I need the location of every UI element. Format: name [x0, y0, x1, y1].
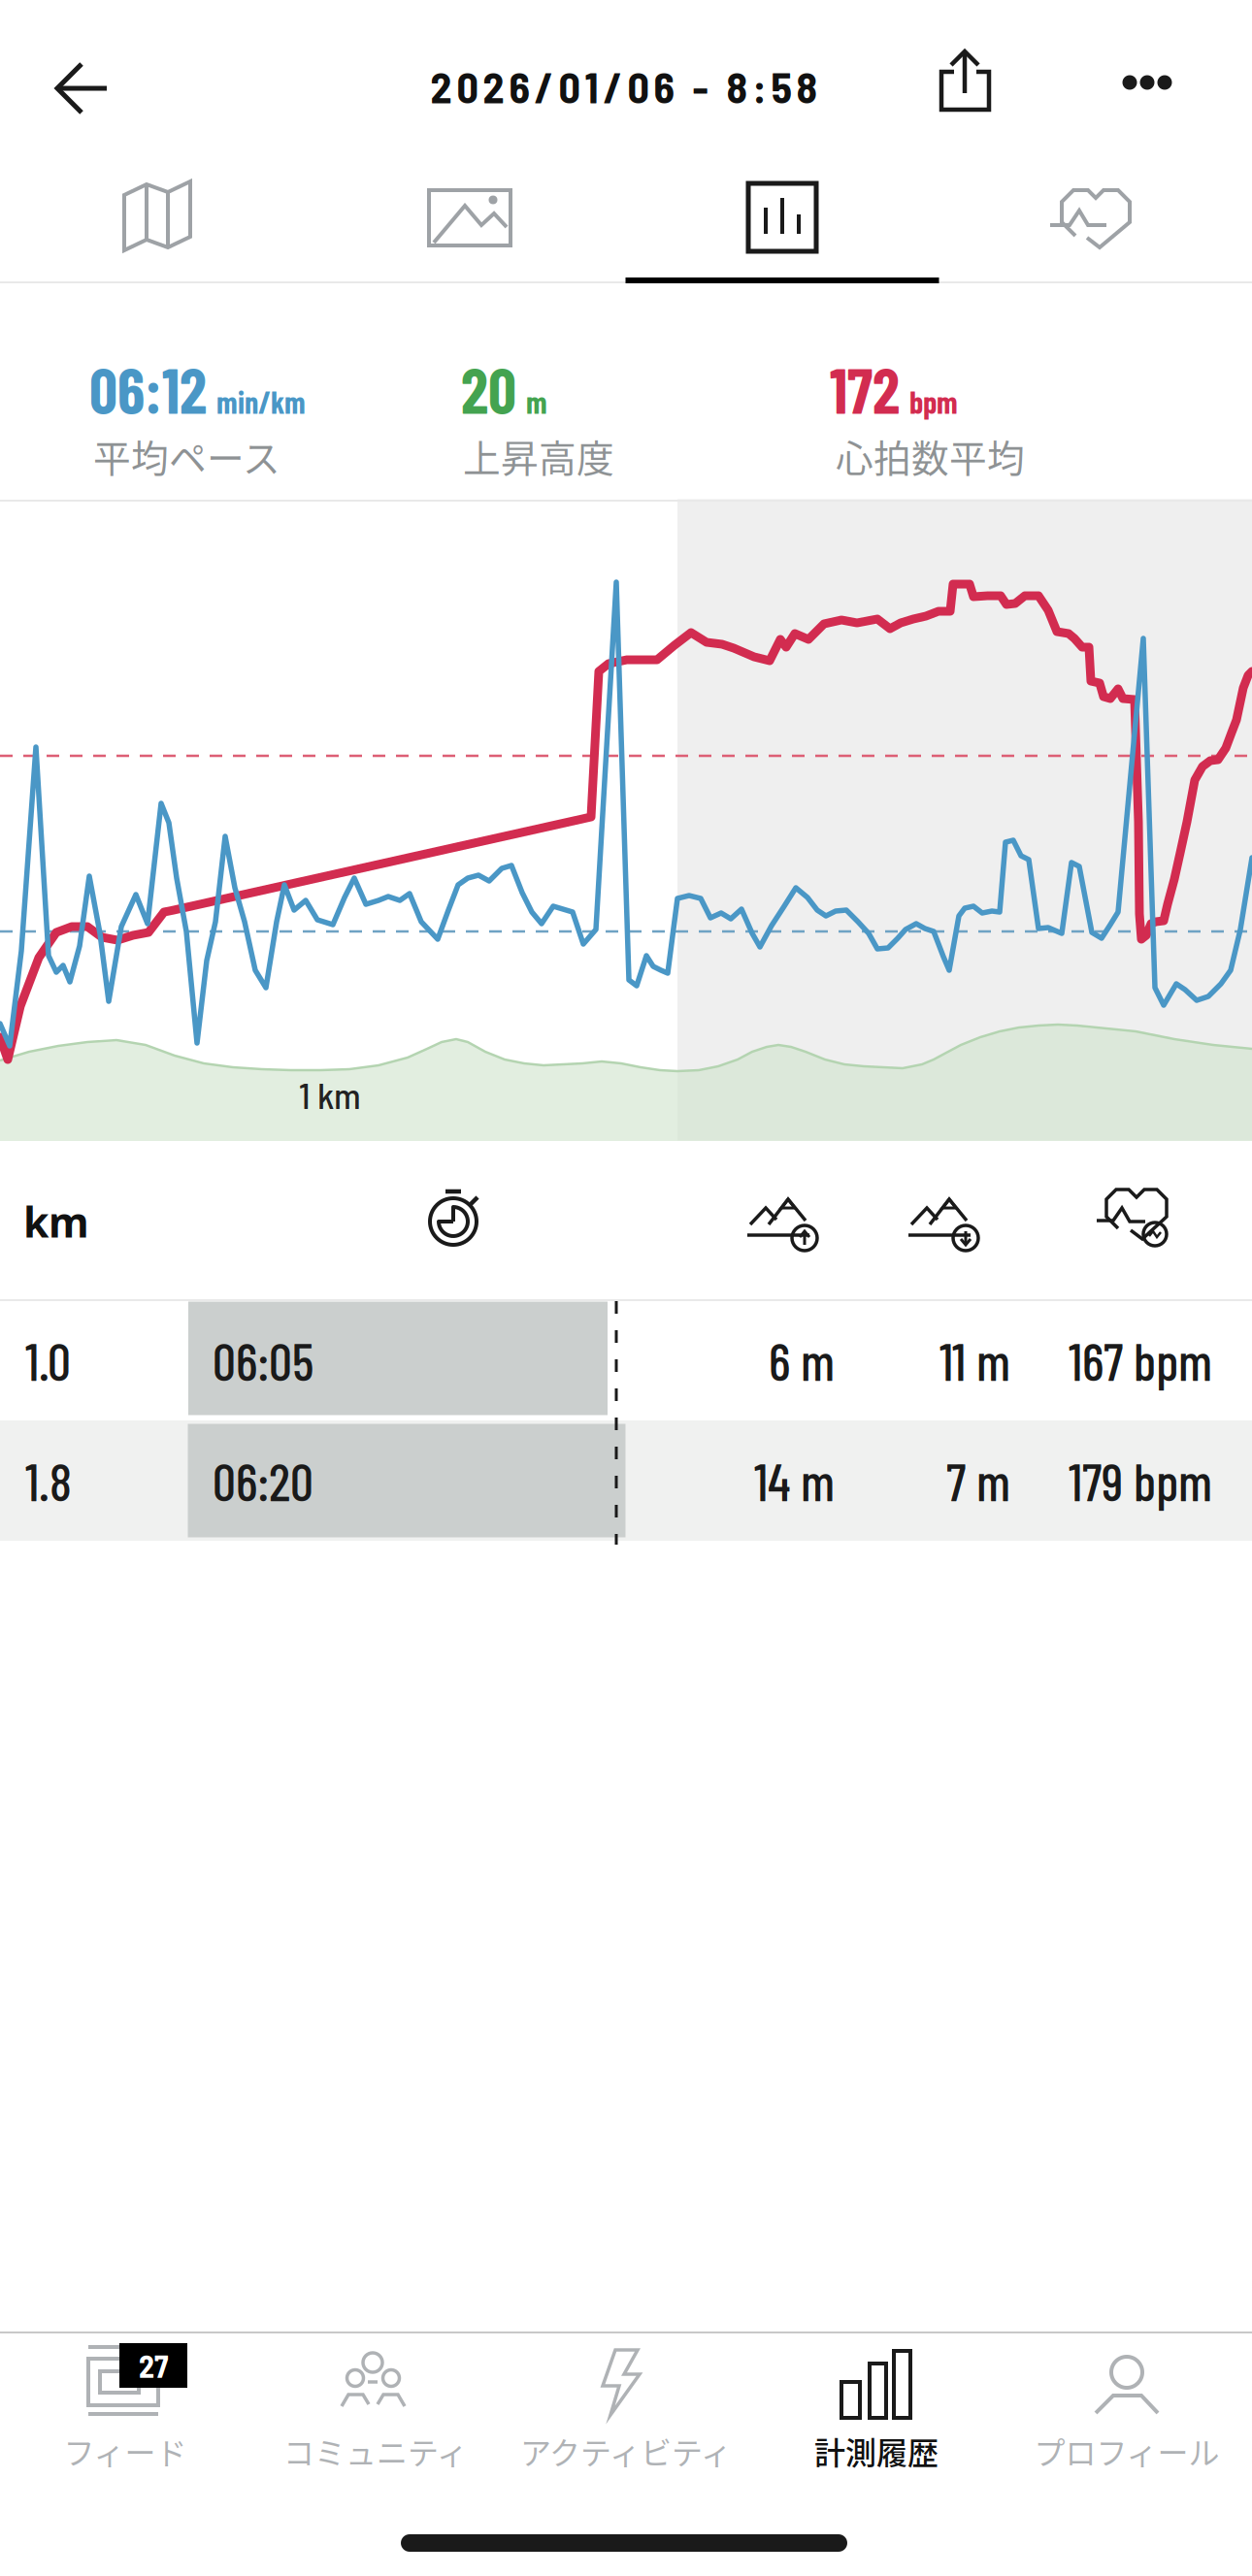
staticText: 179 bpm [1069, 1450, 1212, 1512]
staticText: 11 m [939, 1329, 1010, 1391]
staticText: 2026/01/06 - 8:58 [430, 61, 818, 112]
button[interactable] [916, 33, 1013, 130]
staticText: 14 m [754, 1450, 835, 1512]
button[interactable]: 27 [0, 2319, 250, 2503]
staticText: 上昇高度 [463, 429, 614, 483]
staticText: 6 m [769, 1329, 835, 1391]
button[interactable]: アクティビティ [501, 2319, 751, 2503]
staticText: bpm [909, 383, 958, 420]
staticText: 7 m [946, 1450, 1010, 1512]
button[interactable] [28, 35, 135, 142]
button[interactable] [1099, 34, 1196, 131]
button[interactable] [626, 154, 939, 280]
staticText: 1.8 [25, 1450, 72, 1512]
staticText: 172 [830, 352, 900, 426]
staticText: 心拍数平均 [836, 429, 1025, 483]
button[interactable]: コミュニティ [250, 2319, 501, 2503]
button[interactable] [939, 154, 1252, 280]
staticText: 20 [461, 352, 516, 426]
staticText: min/km [216, 383, 306, 420]
staticText: 06:12 [89, 352, 207, 426]
staticText: 計測履歴 [814, 2428, 939, 2473]
staticText: アクティビティ [520, 2428, 732, 2473]
staticText: 06:05 [213, 1329, 313, 1391]
staticText: 1 km [299, 1073, 361, 1116]
staticText: 27 [139, 2347, 168, 2384]
staticText: km [23, 1194, 89, 1249]
staticText: コミュニティ [283, 2428, 468, 2473]
staticText: 167 bpm [1069, 1329, 1212, 1391]
button[interactable]: 計測履歴 [751, 2319, 1002, 2503]
staticText: 1.0 [25, 1329, 71, 1391]
staticText: プロフィール [1034, 2428, 1219, 2473]
button[interactable]: プロフィール [1002, 2319, 1252, 2503]
staticText: m [526, 383, 547, 420]
staticText: 06:20 [213, 1450, 313, 1512]
staticText: 平均ペース [93, 429, 280, 483]
staticText: フィード [64, 2428, 187, 2473]
button[interactable] [313, 154, 626, 280]
button[interactable] [0, 154, 313, 280]
